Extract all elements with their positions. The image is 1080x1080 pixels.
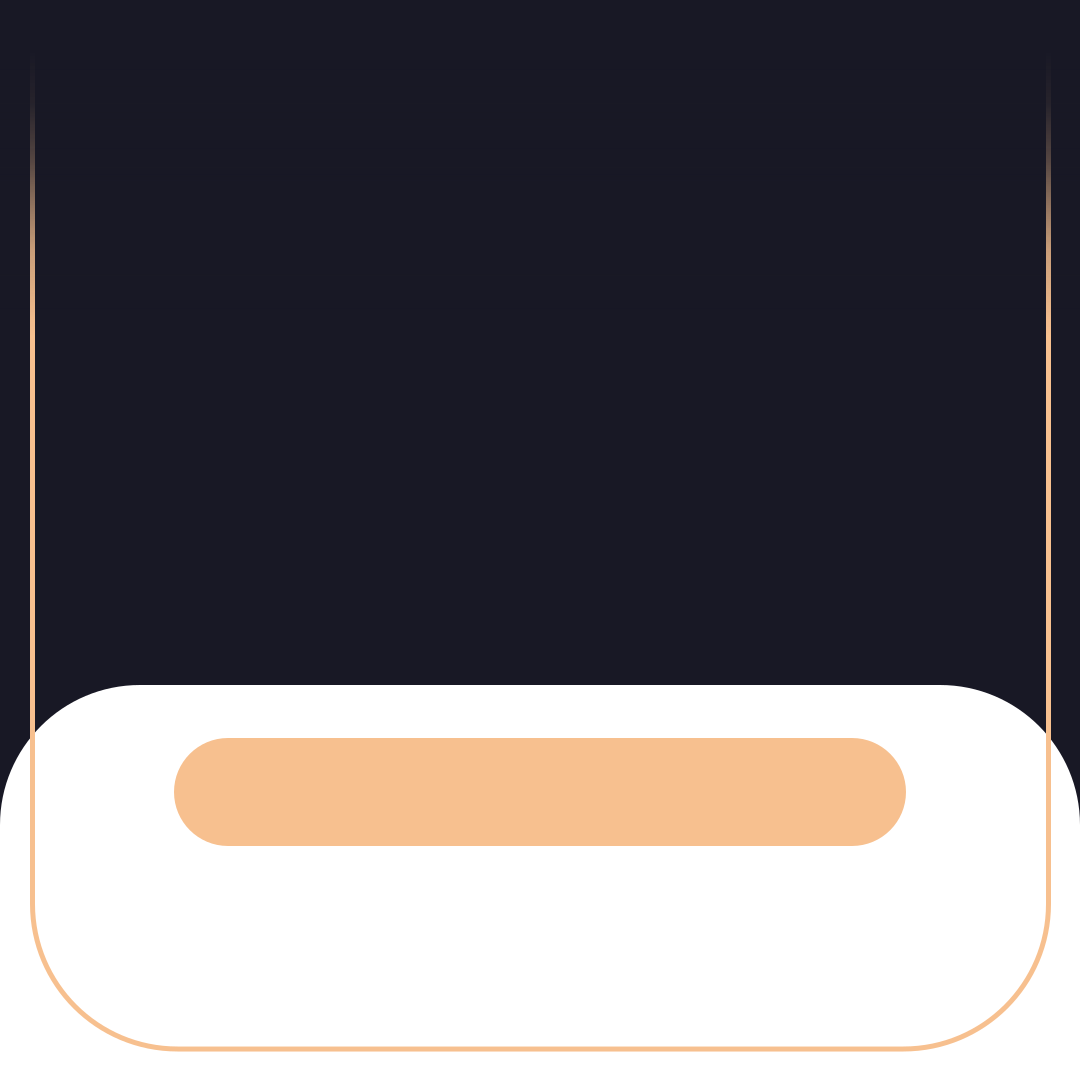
button[interactable]: Sheet bbox=[0, 685, 1080, 1080]
button[interactable]: Continue bbox=[174, 738, 906, 846]
